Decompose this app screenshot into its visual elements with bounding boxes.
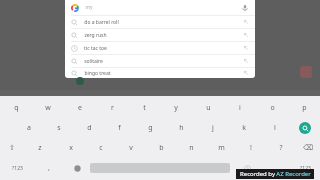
button[interactable]: Emoji (64, 158, 90, 178)
button[interactable]: bingo treat (65, 68, 255, 78)
staticText: zerg rush (84, 32, 107, 39)
button[interactable]: d (74, 118, 104, 138)
button[interactable]: f (104, 118, 135, 138)
button[interactable]: a (14, 118, 44, 138)
staticText: do a barrel roll (84, 19, 119, 26)
button[interactable]: w (32, 98, 64, 118)
staticText: c (99, 143, 103, 153)
staticText: ? (279, 143, 283, 153)
button[interactable]: ? (266, 138, 296, 158)
button[interactable]: v (116, 138, 146, 158)
button[interactable]: ⇧ (0, 138, 24, 158)
staticText: q (14, 103, 19, 113)
staticText: solitaire (84, 58, 103, 65)
button[interactable]: my (65, 0, 255, 15)
button[interactable]: j (197, 118, 228, 138)
button[interactable]: s (44, 118, 74, 138)
button[interactable]: ! (236, 138, 266, 158)
button[interactable]: k (228, 118, 259, 138)
staticText: ?123 (12, 165, 23, 172)
button[interactable]: l (259, 118, 290, 138)
button[interactable]: u (192, 98, 224, 118)
staticText: r (111, 103, 114, 113)
staticText: b (159, 143, 164, 153)
other: Voice search (241, 4, 249, 12)
staticText: x (69, 143, 73, 153)
staticText: , (48, 163, 50, 173)
staticText: . (276, 163, 278, 173)
button[interactable]: p (288, 98, 320, 118)
staticText: e (78, 103, 82, 113)
staticText: ⌫ (303, 144, 313, 152)
button[interactable]: Search (290, 118, 320, 138)
button[interactable]: r (96, 98, 128, 118)
staticText: ⇧ (9, 144, 15, 152)
staticText: h (179, 123, 184, 133)
button[interactable]: z (24, 138, 55, 158)
staticText: j (212, 123, 214, 133)
staticText: k (242, 123, 246, 133)
staticText: t (143, 103, 146, 113)
staticText: o (270, 103, 275, 113)
staticText: z (38, 143, 42, 153)
staticText: y (174, 103, 178, 113)
button[interactable]: . (264, 158, 290, 178)
other: Search (299, 122, 311, 134)
button[interactable]: m (206, 138, 236, 158)
button[interactable]: o (256, 98, 288, 118)
button[interactable]: , (34, 158, 64, 178)
staticText: s (57, 123, 61, 133)
staticText: i (239, 103, 241, 113)
button[interactable]: ?123 (0, 158, 34, 178)
staticText: a (27, 123, 31, 133)
staticText: Recorded by (239, 170, 276, 178)
button[interactable]: n (176, 138, 206, 158)
button[interactable]: x (55, 138, 86, 158)
button[interactable]: q (0, 98, 32, 118)
button[interactable]: h (166, 118, 197, 138)
staticText: ! (250, 143, 252, 153)
staticText: f (118, 123, 121, 133)
staticText: l (274, 123, 276, 133)
button[interactable]: i (224, 98, 256, 118)
staticText: AZ Recorder (276, 170, 311, 178)
button[interactable]: tic tac toe (65, 42, 255, 54)
button[interactable]: zerg rush (65, 29, 255, 41)
staticText: v (129, 143, 133, 153)
button[interactable]: solitaire (65, 55, 255, 67)
button[interactable]: y (160, 98, 192, 118)
staticText: n (189, 143, 194, 153)
staticText: bingo treat (84, 70, 111, 77)
staticText: d (87, 123, 92, 133)
staticText: tic tac toe (84, 45, 107, 52)
button[interactable]: Settings (230, 158, 264, 178)
button[interactable]: b (146, 138, 176, 158)
button[interactable]: t (128, 98, 160, 118)
staticText: my (85, 4, 93, 11)
button[interactable]: do a barrel roll (65, 16, 255, 28)
button[interactable]: ⌫ (296, 138, 320, 158)
button[interactable]: c (86, 138, 116, 158)
staticText: u (206, 103, 211, 113)
staticText: ?123 (300, 165, 311, 172)
staticText: p (302, 103, 307, 113)
button[interactable]: ?123 (290, 158, 320, 178)
staticText: g (148, 123, 153, 133)
staticText: w (45, 103, 51, 113)
staticText: m (218, 143, 225, 153)
button[interactable]: g (135, 118, 166, 138)
button[interactable]: e (64, 98, 96, 118)
